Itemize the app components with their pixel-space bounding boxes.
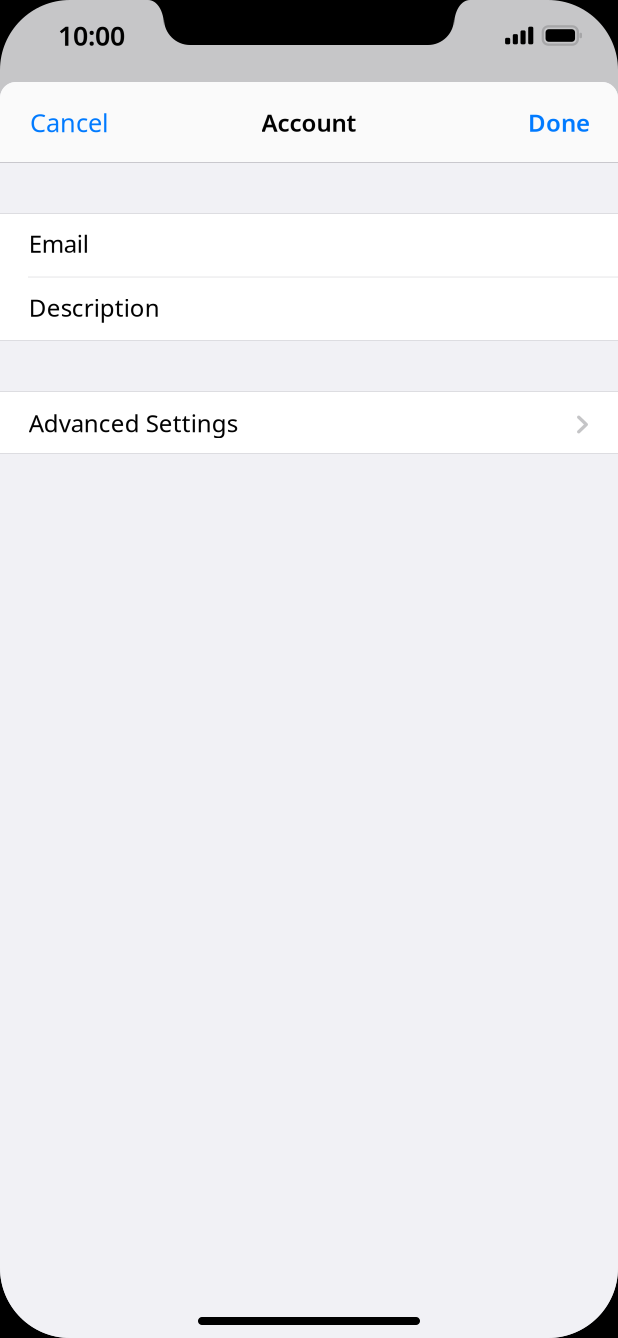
staticText: Cancel — [30, 106, 109, 139]
button[interactable]: Description — [0, 277, 618, 340]
button[interactable]: Advanced Settings — [0, 393, 618, 456]
staticText: Account — [261, 107, 356, 138]
staticText: Done — [528, 107, 590, 138]
staticText: Advanced Settings — [29, 407, 238, 439]
button[interactable]: Done — [528, 107, 590, 138]
button[interactable]: Email — [0, 213, 618, 276]
staticText: 10:00 — [58, 18, 125, 53]
staticText: Description — [29, 292, 160, 323]
staticText: Email — [29, 228, 89, 259]
button[interactable]: Cancel — [30, 106, 109, 139]
